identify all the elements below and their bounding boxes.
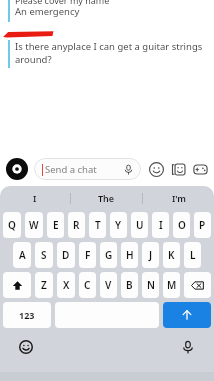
- staticText: J: [149, 248, 153, 262]
- button[interactable]: M: [163, 272, 180, 298]
- button[interactable]: L: [184, 242, 201, 268]
- staticText: U: [136, 218, 144, 232]
- button[interactable]: Games: [189, 158, 211, 180]
- button[interactable]: Send: [163, 302, 211, 328]
- button[interactable]: Shift: [3, 272, 31, 298]
- staticText: D: [62, 248, 70, 262]
- button[interactable]: Cutouts: [167, 158, 189, 180]
- button[interactable]: Q: [3, 212, 21, 238]
- staticText: G: [105, 248, 113, 262]
- staticText: 123: [19, 309, 35, 321]
- staticText: H: [126, 248, 134, 262]
- button[interactable]: Open camera: [5, 157, 29, 181]
- button[interactable]: A: [13, 242, 31, 268]
- button[interactable]: X: [57, 272, 75, 298]
- staticText: Is there anyplace I can get a guitar str…: [15, 40, 203, 53]
- button[interactable]: Emoji: [16, 337, 36, 357]
- button[interactable]: E: [47, 212, 64, 238]
- staticText: W: [29, 218, 39, 232]
- button[interactable]: H: [121, 242, 138, 268]
- staticText: Q: [8, 218, 16, 232]
- staticText: A: [19, 248, 26, 262]
- button[interactable]: F: [79, 242, 96, 268]
- staticText: N: [147, 278, 155, 292]
- staticText: R: [73, 218, 80, 232]
- button[interactable]: D: [57, 242, 75, 268]
- button[interactable]: Z: [35, 272, 53, 298]
- button[interactable]: O: [173, 212, 190, 238]
- staticText: Y: [115, 218, 122, 232]
- button[interactable]: 123: [3, 302, 51, 328]
- staticText: Please cover my name: [15, 0, 110, 6]
- button[interactable]: K: [163, 242, 180, 268]
- button[interactable]: S: [35, 242, 53, 268]
- staticText: E: [53, 218, 59, 232]
- staticText: M: [167, 278, 177, 292]
- staticText: P: [199, 218, 206, 232]
- staticText: I'm: [172, 192, 186, 204]
- staticText: B: [126, 278, 133, 292]
- button[interactable]: R: [68, 212, 85, 238]
- staticText: C: [84, 278, 91, 292]
- staticText: X: [63, 278, 70, 292]
- staticText: I: [159, 218, 163, 232]
- staticText: An emergency: [15, 5, 80, 18]
- button[interactable]: J: [142, 242, 159, 268]
- staticText: L: [190, 248, 196, 262]
- button[interactable]: I'm: [143, 186, 214, 210]
- staticText: Send a chat: [45, 163, 97, 176]
- staticText: V: [105, 278, 112, 292]
- button[interactable]: G: [100, 242, 117, 268]
- button[interactable]: Voice note: [118, 159, 138, 179]
- staticText: S: [41, 248, 47, 262]
- staticText: The: [98, 192, 115, 204]
- button[interactable]: Y: [110, 212, 127, 238]
- button[interactable]: Send a chat: [34, 158, 141, 180]
- staticText: K: [168, 248, 175, 262]
- button[interactable]: P: [194, 212, 211, 238]
- button[interactable]: I: [152, 212, 169, 238]
- staticText: T: [95, 218, 101, 232]
- button[interactable]: N: [142, 272, 159, 298]
- staticText: I: [33, 192, 37, 204]
- button[interactable]: I: [0, 186, 70, 210]
- button[interactable]: B: [121, 272, 138, 298]
- button[interactable]: Backspace: [184, 272, 211, 298]
- staticText: O: [178, 218, 186, 232]
- staticText: around?: [15, 53, 52, 66]
- button[interactable]: Voice input: [178, 337, 198, 357]
- staticText: Z: [41, 278, 47, 292]
- button[interactable]: Stickers: [145, 158, 167, 180]
- button[interactable]: C: [79, 272, 96, 298]
- button[interactable]: W: [25, 212, 43, 238]
- staticText: F: [85, 248, 91, 262]
- button[interactable]: T: [89, 212, 106, 238]
- button[interactable]: U: [131, 212, 148, 238]
- button[interactable]: V: [100, 272, 117, 298]
- button[interactable]: The: [71, 186, 142, 210]
